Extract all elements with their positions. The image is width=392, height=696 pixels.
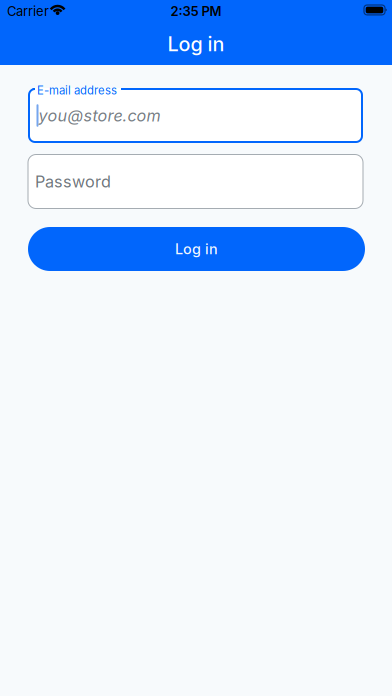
button[interactable]: Password [28, 154, 363, 208]
staticText: 2:35 PM [170, 3, 221, 19]
staticText: E-mail address [37, 83, 117, 97]
staticText: Password [35, 172, 111, 191]
staticText: Carrier [7, 3, 49, 19]
staticText: Log in [167, 32, 224, 56]
button[interactable]: Log in [28, 227, 365, 271]
staticText: Log in [175, 240, 218, 258]
button[interactable]: you@store.com [28, 88, 363, 143]
staticText: you@store.com [38, 106, 160, 125]
